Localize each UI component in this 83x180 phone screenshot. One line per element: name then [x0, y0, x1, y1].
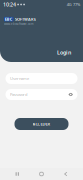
- staticText: www.ebcsoftware.com: [4, 22, 33, 26]
- staticText: Password: [10, 92, 27, 97]
- staticText: EBC: [5, 16, 13, 22]
- staticText: 10:24: [3, 1, 16, 8]
- button[interactable]: Recents: [10, 168, 24, 180]
- button[interactable]: Home: [34, 168, 48, 180]
- staticText: SOFTWARE: [15, 16, 36, 22]
- button[interactable]: ACCEDER: [14, 118, 68, 130]
- staticText: Login: [57, 49, 71, 56]
- staticText: ACCEDER: [32, 121, 50, 127]
- button[interactable]: Username: [5, 73, 77, 84]
- staticText: Username: [10, 76, 29, 81]
- staticText: 4G: [67, 2, 72, 7]
- staticText: 77%: [73, 2, 80, 7]
- button[interactable]: Back: [59, 168, 73, 180]
- button[interactable]: Password: [5, 89, 77, 100]
